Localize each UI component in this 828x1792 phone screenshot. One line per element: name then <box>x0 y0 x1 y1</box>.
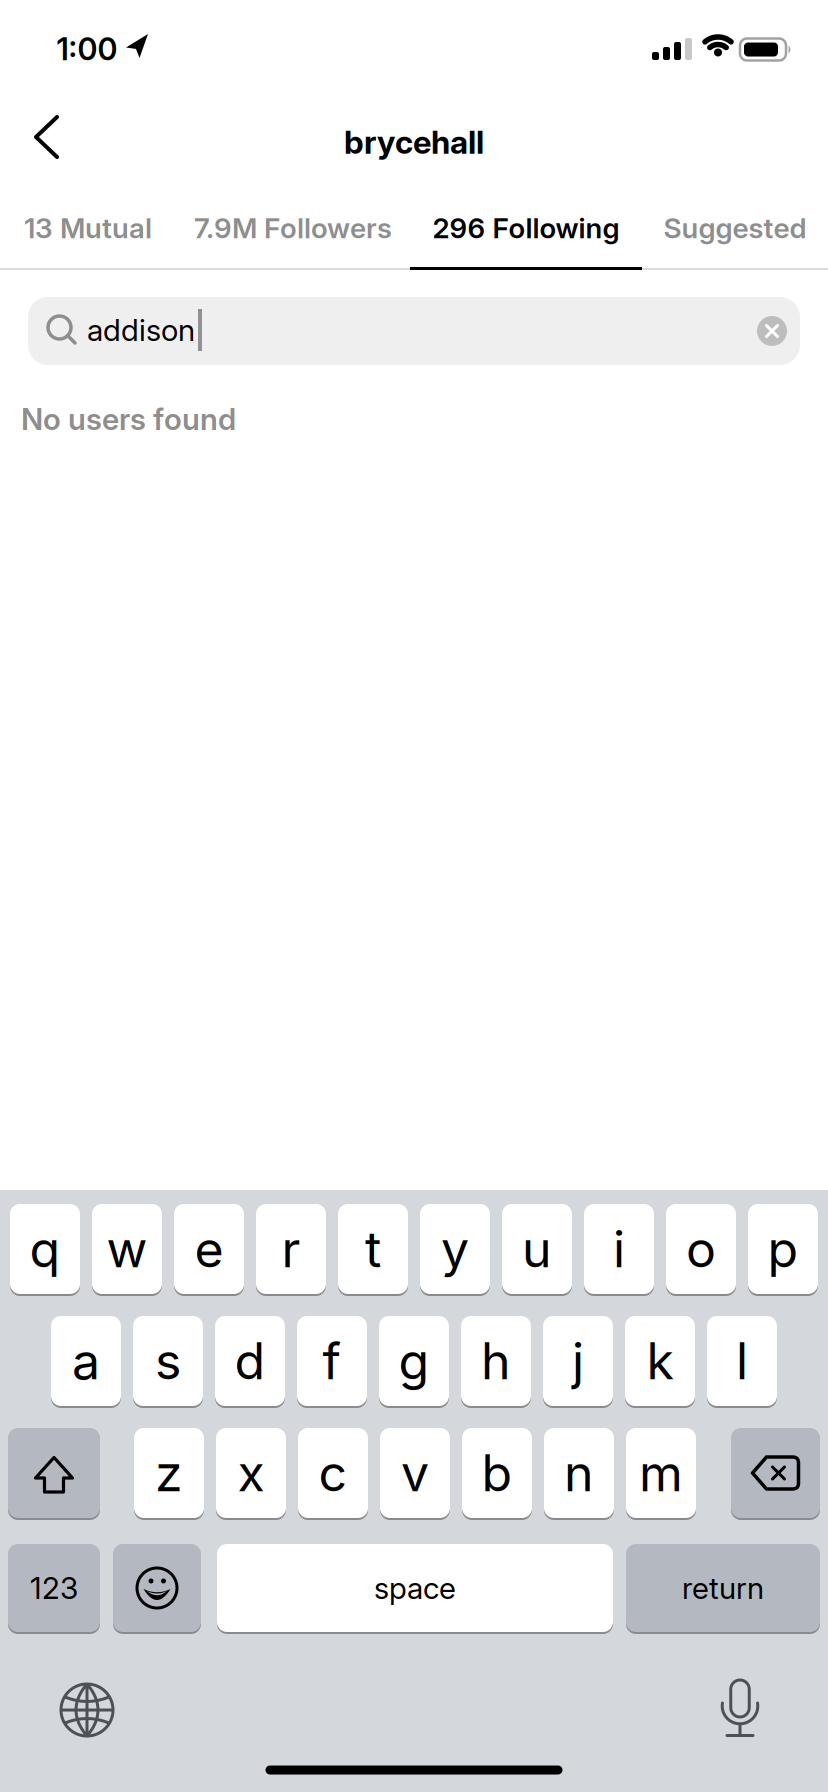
button[interactable]: l <box>707 1316 777 1406</box>
button[interactable]: Clear search text <box>747 306 797 356</box>
button[interactable]: t <box>338 1204 408 1294</box>
button[interactable]: o <box>666 1204 736 1294</box>
staticText: l <box>736 1331 748 1391</box>
button[interactable]: a <box>51 1316 121 1406</box>
staticText: d <box>234 1331 265 1391</box>
button[interactable]: j <box>543 1316 613 1406</box>
staticText: h <box>481 1331 511 1391</box>
staticText: z <box>155 1443 183 1503</box>
staticText: w <box>106 1219 147 1279</box>
staticText: Suggested <box>663 211 806 245</box>
staticText: 123 <box>30 1570 78 1606</box>
button[interactable]: 296 Following <box>422 197 629 259</box>
button[interactable]: x <box>216 1428 286 1518</box>
staticText: v <box>401 1443 429 1503</box>
button[interactable]: Back <box>16 97 77 177</box>
staticText: u <box>522 1219 552 1279</box>
staticText: 1:00 <box>56 30 117 67</box>
button[interactable]: w <box>92 1204 162 1294</box>
button[interactable]: 13 Mutual <box>14 197 162 259</box>
button[interactable]: 7.9M Followers <box>184 197 402 259</box>
staticText: j <box>572 1331 584 1391</box>
staticText: return <box>682 1570 764 1606</box>
button[interactable]: u <box>502 1204 572 1294</box>
staticText: p <box>767 1219 798 1279</box>
button[interactable]: n <box>544 1428 614 1518</box>
staticText: x <box>237 1443 264 1503</box>
staticText: 296 Following <box>432 211 619 245</box>
button[interactable]: p <box>748 1204 818 1294</box>
button[interactable]: k <box>625 1316 695 1406</box>
button[interactable]: g <box>379 1316 449 1406</box>
staticText: brycehall <box>344 123 484 161</box>
button[interactable]: s <box>133 1316 203 1406</box>
staticText: s <box>155 1331 181 1391</box>
staticText: 13 Mutual <box>24 211 152 245</box>
button[interactable]: b <box>462 1428 532 1518</box>
button[interactable]: f <box>297 1316 367 1406</box>
button[interactable]: v <box>380 1428 450 1518</box>
button[interactable]: d <box>215 1316 285 1406</box>
button[interactable]: Emoji <box>113 1544 201 1632</box>
button[interactable]: y <box>420 1204 490 1294</box>
button[interactable]: c <box>298 1428 368 1518</box>
button[interactable]: Next keyboard <box>47 1670 127 1750</box>
button[interactable]: m <box>626 1428 696 1518</box>
button[interactable]: Shift <box>8 1428 100 1518</box>
button[interactable]: 123 <box>8 1544 100 1632</box>
staticText: b <box>481 1443 512 1503</box>
staticText: c <box>318 1443 347 1503</box>
button[interactable]: q <box>10 1204 80 1294</box>
staticText: space <box>374 1570 456 1606</box>
button[interactable]: h <box>461 1316 531 1406</box>
staticText: No users found <box>21 401 236 437</box>
button[interactable]: z <box>134 1428 204 1518</box>
button[interactable]: i <box>584 1204 654 1294</box>
staticText: k <box>646 1331 673 1391</box>
staticText: o <box>686 1219 716 1279</box>
button[interactable]: Delete <box>731 1428 820 1518</box>
staticText: n <box>564 1443 594 1503</box>
button[interactable]: space <box>217 1544 613 1632</box>
button[interactable]: r <box>256 1204 326 1294</box>
staticText: a <box>72 1331 100 1391</box>
staticText: i <box>613 1219 625 1279</box>
staticText: 7.9M Followers <box>194 211 392 245</box>
button[interactable]: Suggested <box>653 197 816 259</box>
button[interactable]: e <box>174 1204 244 1294</box>
button[interactable]: Dictate <box>706 1664 774 1752</box>
staticText: g <box>398 1331 429 1391</box>
staticText: e <box>194 1219 223 1279</box>
staticText: m <box>639 1443 683 1503</box>
staticText: y <box>441 1219 469 1279</box>
staticText: f <box>322 1331 341 1391</box>
staticText: r <box>281 1219 300 1279</box>
staticText: addison <box>87 312 195 348</box>
button[interactable]: return <box>626 1544 820 1632</box>
staticText: t <box>365 1219 381 1279</box>
staticText: q <box>29 1219 60 1279</box>
